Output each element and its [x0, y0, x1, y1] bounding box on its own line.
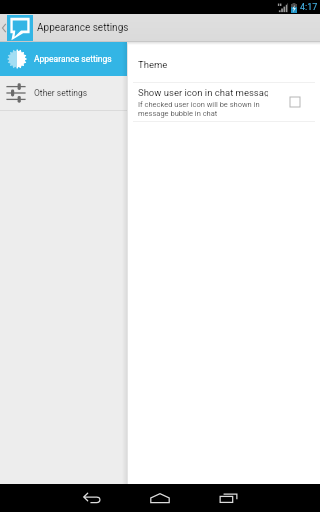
button[interactable]: Back — [58, 484, 126, 512]
button[interactable]: Recent apps — [194, 484, 262, 512]
staticText: Show user icon in chat message — [138, 87, 268, 97]
staticText: Appearance settings — [34, 54, 112, 64]
staticText: 4:17 — [300, 2, 318, 13]
button[interactable]: Appearance settings — [0, 14, 320, 42]
staticText: Appearance settings — [37, 22, 129, 34]
button[interactable]: Show user icon in chat message checkbox — [281, 88, 309, 116]
staticText: Theme — [138, 59, 168, 70]
button[interactable]: Home — [126, 484, 194, 512]
button[interactable]: Other settings — [0, 76, 127, 110]
button[interactable]: Appearance settings — [0, 42, 127, 76]
staticText: If checked user icon will be shown in me… — [138, 100, 260, 118]
staticText: Other settings — [34, 88, 88, 98]
button[interactable]: Show user icon in chat message — [128, 83, 320, 121]
